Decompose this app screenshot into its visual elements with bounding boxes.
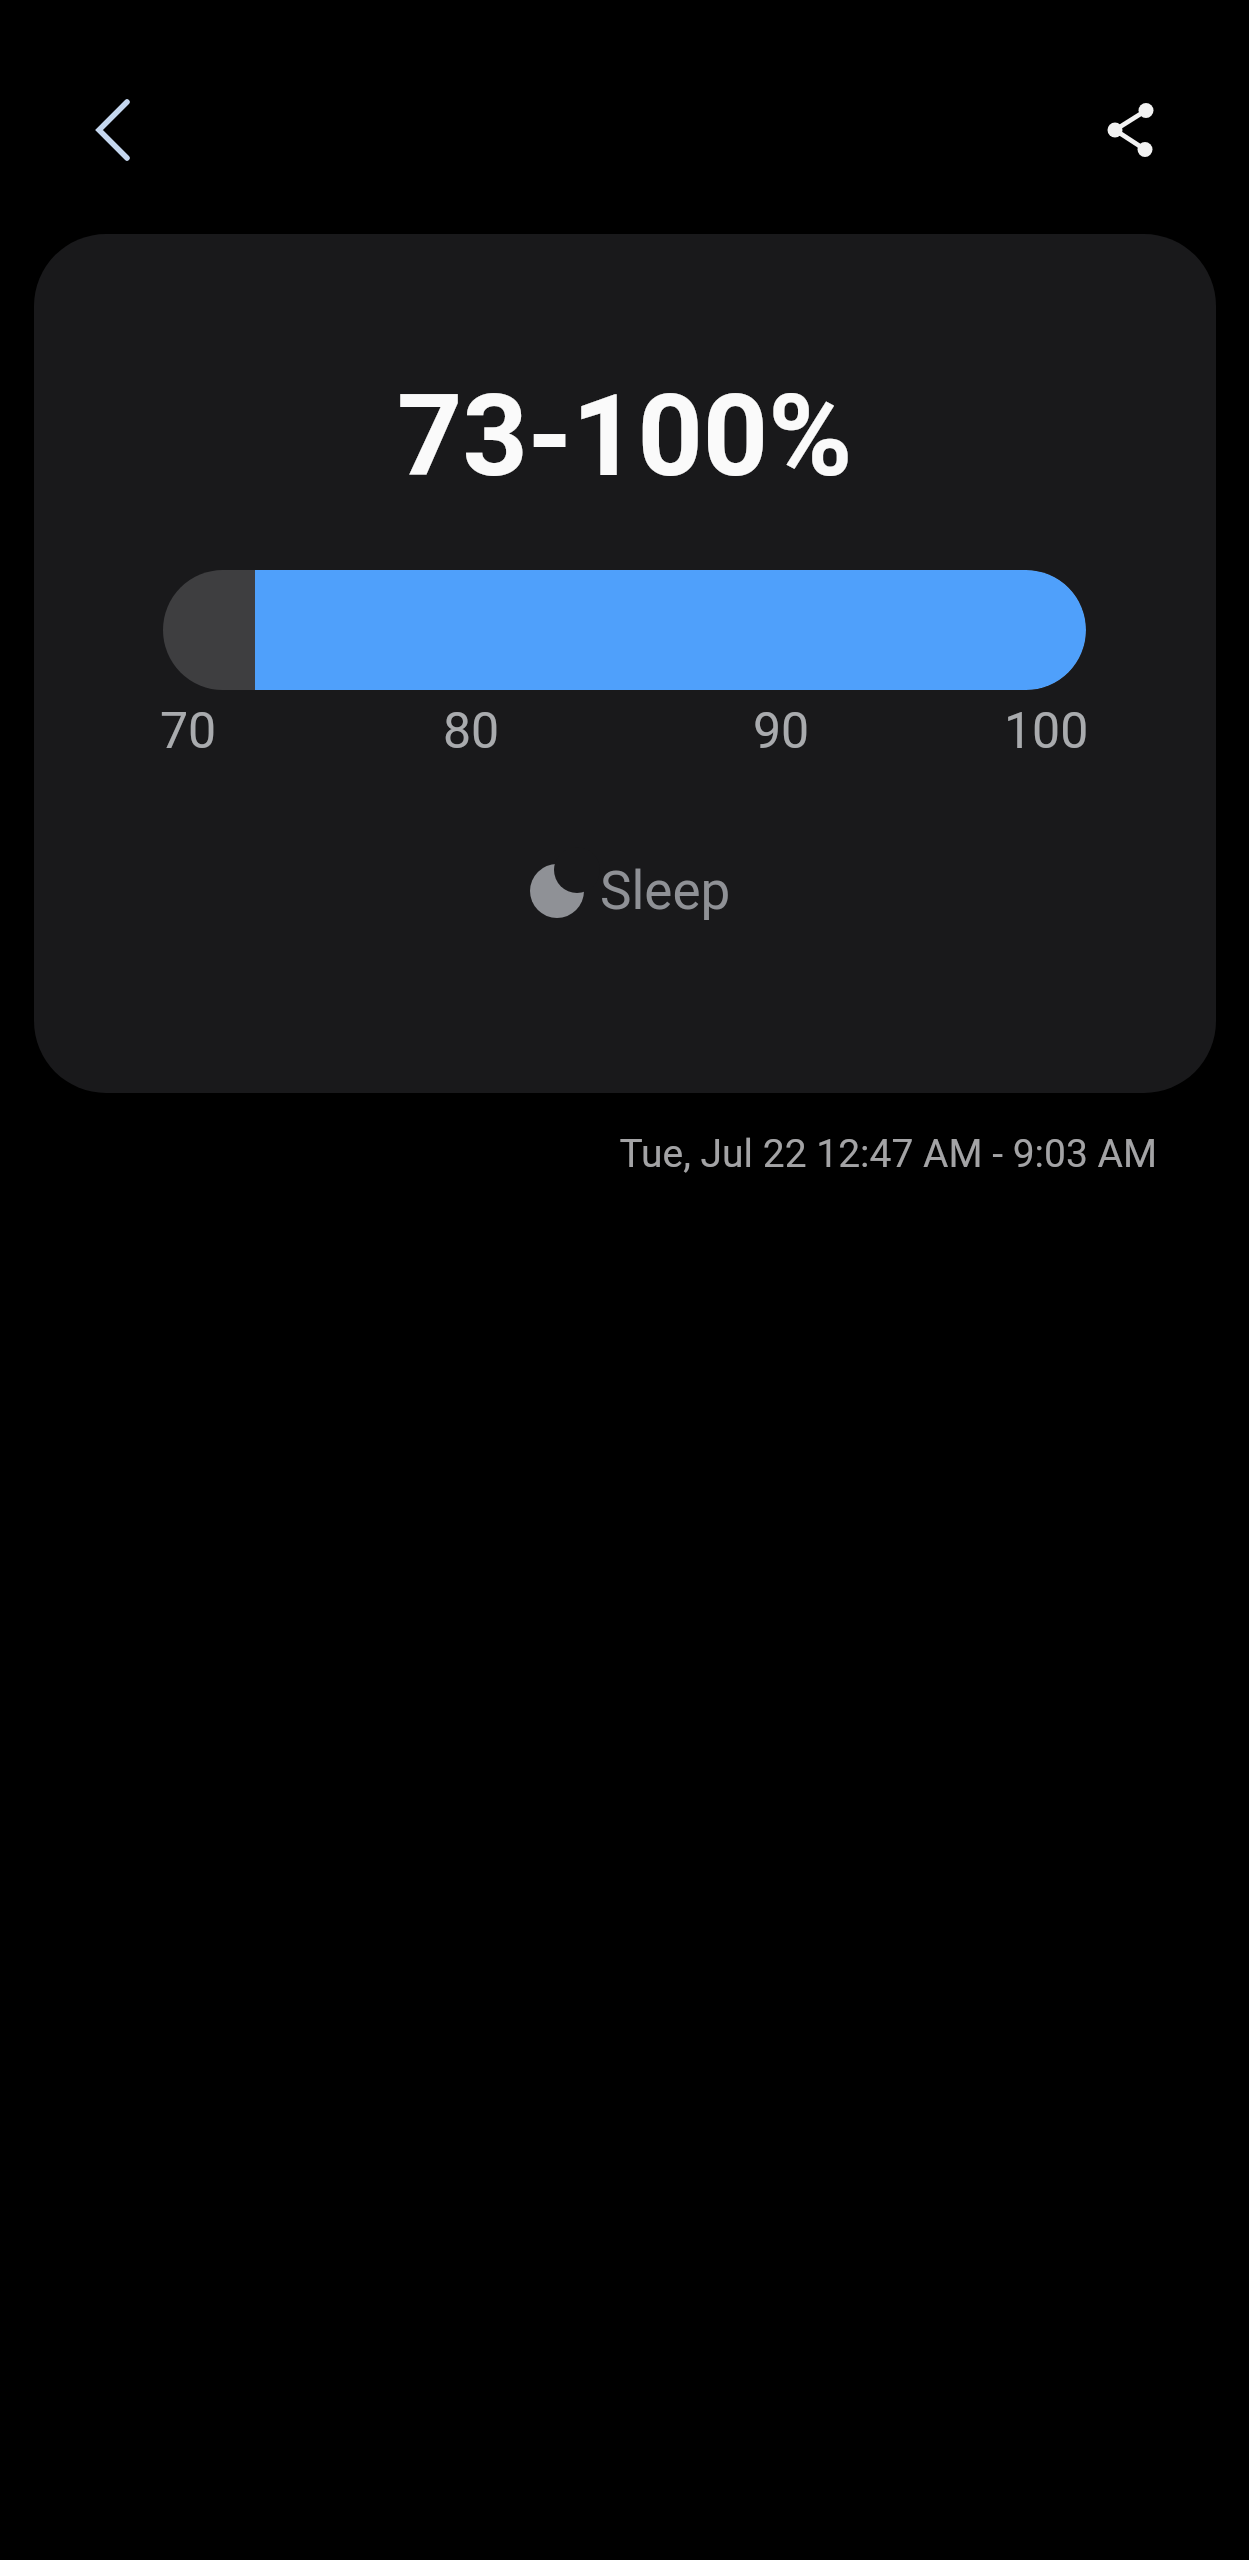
staticText: Sleep	[600, 860, 731, 922]
staticText: 80	[443, 702, 500, 761]
staticText: 100	[1004, 702, 1089, 761]
button[interactable]	[1083, 94, 1179, 166]
staticText: 73-100%	[397, 369, 853, 503]
button[interactable]	[69, 86, 157, 174]
staticText: 70	[160, 702, 217, 761]
staticText: 90	[753, 702, 810, 761]
staticText: Tue, Jul 22 12:47 AM - 9:03 AM	[619, 1131, 1157, 1177]
